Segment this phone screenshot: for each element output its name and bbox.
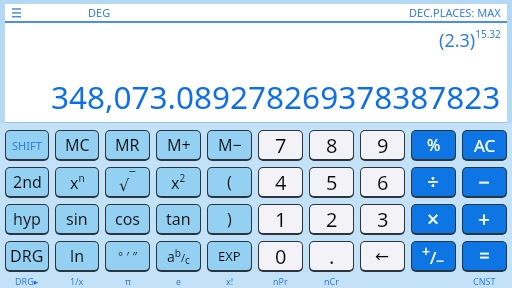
staticText: = <box>479 243 490 269</box>
staticText: 1/x <box>70 275 84 287</box>
button[interactable]: 7 <box>258 130 303 161</box>
staticText: % <box>427 134 441 156</box>
button[interactable]: ) <box>207 204 252 235</box>
button[interactable]: × <box>411 204 456 235</box>
staticText: ( <box>227 171 232 193</box>
button[interactable]: ( <box>207 167 252 198</box>
button[interactable]: . <box>309 241 354 272</box>
staticText: 7 <box>275 132 287 159</box>
button[interactable]: DRG <box>5 241 49 272</box>
button[interactable]: xn <box>55 167 99 198</box>
staticText: ← <box>375 246 390 266</box>
button[interactable]: 9 <box>360 130 405 161</box>
staticText: 5 <box>326 169 338 196</box>
button[interactable]: M− <box>207 130 252 161</box>
button[interactable]: SHIFT <box>5 130 49 161</box>
staticText: DEC.PLACES: MAX <box>409 5 501 20</box>
button[interactable]: MC <box>55 130 99 161</box>
staticText: 2 <box>326 206 338 233</box>
button[interactable]: cos <box>105 204 150 235</box>
button[interactable]: 3 <box>360 204 405 235</box>
staticText: cos <box>115 208 141 230</box>
staticText: 348,073.089278269378387823 <box>51 75 501 118</box>
button[interactable]: 2nd <box>5 167 49 198</box>
staticText: AC <box>474 134 496 157</box>
staticText: sin <box>66 208 88 230</box>
staticText: 3 <box>377 206 389 233</box>
staticText: DEG <box>88 5 111 20</box>
staticText: + <box>478 205 491 233</box>
button[interactable]: 4 <box>258 167 303 198</box>
staticText: EXP <box>218 247 241 265</box>
button[interactable]: sin <box>55 204 99 235</box>
staticText: ) <box>227 208 232 230</box>
staticText: e <box>176 275 182 287</box>
button[interactable]: x2 <box>156 167 201 198</box>
staticText: ab/c <box>167 246 190 267</box>
staticText: (2.3)15.32 <box>439 27 501 52</box>
staticText: x2 <box>171 171 186 194</box>
staticText: ° ′ ″ <box>118 248 138 264</box>
button[interactable]: 2 <box>309 204 354 235</box>
button[interactable]: ab/c <box>156 241 201 272</box>
button[interactable]: 0 <box>258 241 303 272</box>
button[interactable]: + <box>462 204 507 235</box>
button[interactable]: 5 <box>309 167 354 198</box>
button[interactable]: 6 <box>360 167 405 198</box>
button[interactable]: 1 <box>258 204 303 235</box>
button[interactable]: AC <box>462 130 507 161</box>
staticText: 4 <box>275 169 287 196</box>
staticText: CNST <box>473 275 496 287</box>
staticText: DRG <box>10 245 44 267</box>
staticText: MR <box>115 134 140 156</box>
staticText: − <box>478 168 491 196</box>
button[interactable]: ° ′ ″ <box>105 241 150 272</box>
button[interactable]: ← <box>360 241 405 272</box>
button[interactable]: ln <box>55 241 99 272</box>
staticText: xn <box>70 171 85 194</box>
staticText: x! <box>226 275 234 287</box>
staticText: nPr <box>273 275 288 287</box>
staticText: 1 <box>275 206 287 233</box>
staticText: ln <box>70 245 85 267</box>
staticText: MC <box>65 134 90 156</box>
button[interactable]: % <box>411 130 456 161</box>
staticText: ÷ <box>427 168 440 196</box>
staticText: DRG▸ <box>15 275 39 287</box>
button[interactable]: MR <box>105 130 150 161</box>
button[interactable]: hyp <box>5 204 49 235</box>
button[interactable]: 8 <box>309 130 354 161</box>
button[interactable]: EXP <box>207 241 252 272</box>
button[interactable]: − <box>462 167 507 198</box>
staticText: 0 <box>275 243 287 270</box>
staticText: . <box>329 243 335 270</box>
button[interactable] <box>12 4 21 21</box>
button[interactable]: √¯ <box>105 167 150 198</box>
staticText: SHIFT <box>12 138 42 153</box>
staticText: M− <box>218 134 242 156</box>
staticText: 8 <box>326 132 338 159</box>
staticText: π <box>125 275 131 287</box>
staticText: M+ <box>167 134 191 156</box>
staticText: √¯ <box>119 169 136 195</box>
button[interactable]: tan <box>156 204 201 235</box>
staticText: nCr <box>324 275 339 287</box>
staticText: 2nd <box>13 171 42 193</box>
staticText: × <box>427 205 440 233</box>
staticText: 9 <box>377 132 389 159</box>
staticText: tan <box>166 208 191 230</box>
button[interactable]: +/− <box>411 241 456 272</box>
button[interactable]: ÷ <box>411 167 456 198</box>
staticText: 6 <box>377 169 389 196</box>
button[interactable]: M+ <box>156 130 201 161</box>
button[interactable]: = <box>462 241 507 272</box>
staticText: +/− <box>422 242 445 270</box>
staticText: hyp <box>13 208 41 230</box>
